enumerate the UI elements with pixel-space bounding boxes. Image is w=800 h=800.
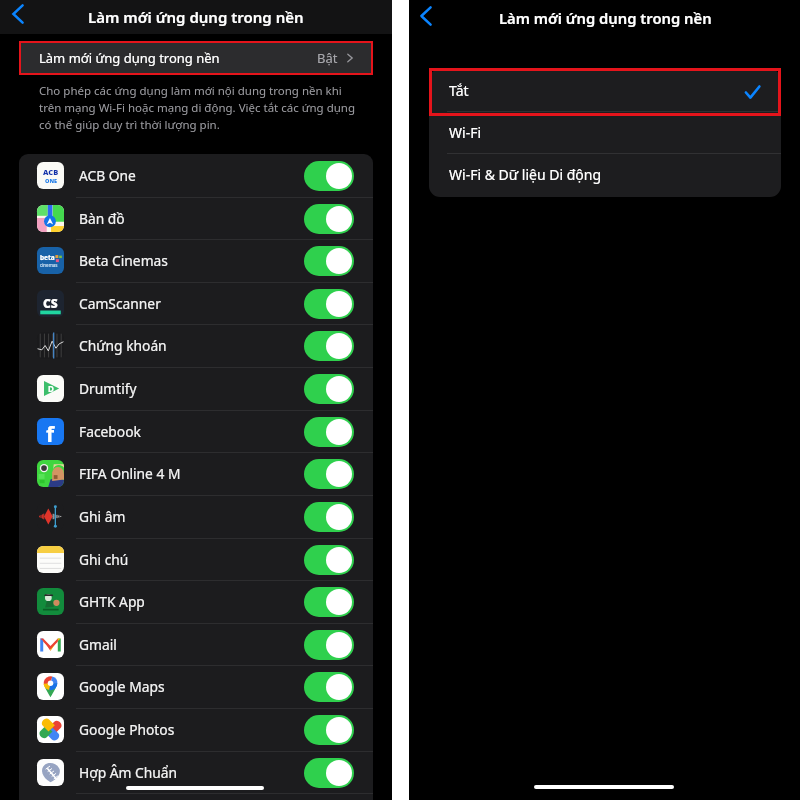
button[interactable]: Chứng khoán background refresh (304, 331, 354, 361)
staticText: Google Maps (79, 677, 165, 696)
staticText: Wi-Fi (449, 123, 482, 142)
staticText: Ghi âm (79, 507, 126, 526)
staticText: CS (43, 295, 58, 311)
staticText: ACB (43, 167, 59, 177)
button[interactable]: Làm mới ứng dụng trong nền (19, 41, 373, 75)
button[interactable]: Hợp Âm Chuẩn background refresh (304, 758, 354, 788)
button[interactable]: Beta Cinemas background refresh (304, 246, 354, 276)
staticText: Hợp Âm Chuẩn (79, 763, 178, 782)
button[interactable]: D (19, 367, 373, 410)
button[interactable]: Facebook background refresh (304, 417, 354, 447)
button[interactable]: Google Photos background refresh (304, 715, 354, 745)
staticText: Làm mới ứng dụng trong nền (39, 49, 220, 67)
button[interactable]: Wi-Fi (429, 111, 781, 153)
staticText: Làm mới ứng dụng trong nền (88, 7, 304, 27)
staticText: CamScanner (79, 294, 161, 313)
button[interactable]: Gmail background refresh (304, 630, 354, 660)
staticText: f (46, 420, 55, 447)
staticText: Drumtify (79, 379, 137, 398)
button[interactable]: FIFA Online 4 M background refresh (304, 459, 354, 489)
button[interactable]: Google Maps (19, 665, 373, 708)
button[interactable]: Ghi chú (19, 538, 373, 581)
staticText: Chứng khoán (79, 336, 167, 355)
staticText: Ghi chú (79, 550, 129, 569)
staticText: cinemas (40, 262, 58, 268)
button[interactable]: Back (2, 0, 34, 30)
staticText: Bàn đồ (79, 209, 125, 228)
staticText: ACB One (79, 166, 136, 185)
button[interactable]: Ghi âm (19, 495, 373, 538)
button[interactable]: Google Photos (19, 708, 373, 751)
staticText: beta (40, 253, 55, 262)
button[interactable]: Ghi âm background refresh (304, 502, 354, 532)
button[interactable]: f (19, 410, 373, 453)
staticText: Beta Cinemas (79, 251, 168, 270)
staticText: Wi-Fi & Dữ liệu Di động (449, 165, 602, 184)
staticText: Gmail (79, 635, 117, 654)
button[interactable]: Back (410, 0, 442, 32)
staticText: Làm mới ứng dụng trong nền (499, 8, 712, 28)
button[interactable]: CS (19, 282, 373, 325)
staticText: Facebook (79, 422, 141, 441)
button[interactable]: Wi-Fi & Dữ liệu Di động (429, 153, 781, 195)
button[interactable]: ACB One background refresh (304, 161, 354, 191)
button[interactable]: Ghi chú background refresh (304, 545, 354, 575)
staticText: Bật (317, 49, 338, 67)
staticText: Google Photos (79, 720, 175, 739)
button[interactable]: Bàn đồ (19, 197, 373, 240)
staticText: ONE (45, 177, 57, 184)
button[interactable]: GHTK App (19, 580, 373, 623)
button[interactable]: Google Maps background refresh (304, 672, 354, 702)
button[interactable]: Gmail (19, 623, 373, 666)
button[interactable]: CamScanner background refresh (304, 289, 354, 319)
button[interactable]: beta (19, 239, 373, 282)
button[interactable]: Hợp Âm Chuẩn (19, 751, 373, 794)
staticText: Tắt (449, 81, 469, 100)
button[interactable]: ACB (19, 154, 373, 197)
button[interactable]: Background refresh toggle (19, 793, 373, 800)
button[interactable]: Chứng khoán (19, 324, 373, 367)
staticText: GHTK App (79, 592, 145, 611)
staticText: D (48, 383, 54, 394)
button[interactable]: Tắt (429, 69, 781, 111)
button[interactable]: FIFA Online 4 M (19, 452, 373, 495)
button[interactable]: GHTK App background refresh (304, 587, 354, 617)
staticText: FIFA Online 4 M (79, 464, 181, 483)
button[interactable]: Drumtify background refresh (304, 374, 354, 404)
staticText: Cho phép các ứng dụng làm mới nội dung t… (39, 83, 361, 132)
button[interactable]: Bàn đồ background refresh (304, 204, 354, 234)
